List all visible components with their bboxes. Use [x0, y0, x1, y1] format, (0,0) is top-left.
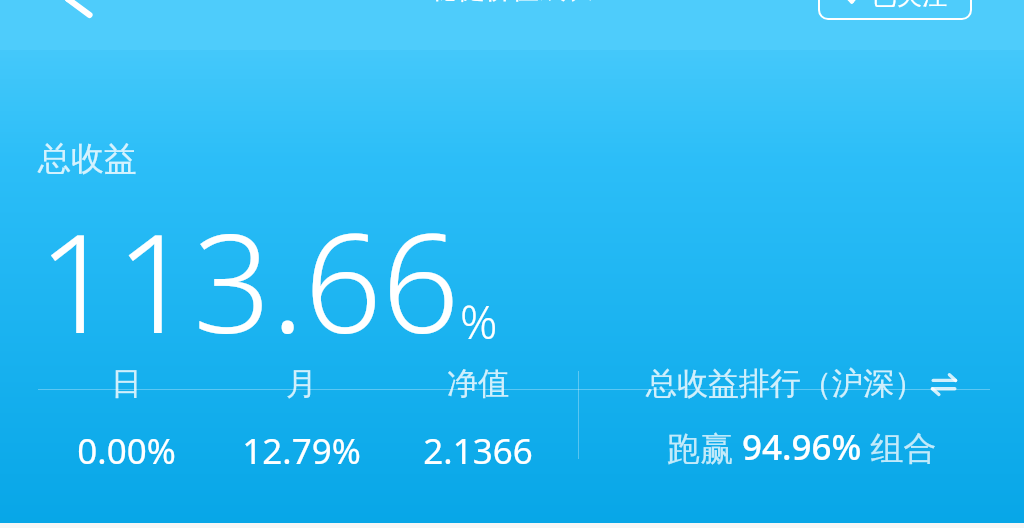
button[interactable]: 已关注 — [818, 0, 972, 20]
staticText: 跑赢 — [667, 425, 742, 470]
staticText: 月 — [286, 364, 317, 403]
staticText: % — [460, 290, 498, 353]
staticText: 总收益 — [38, 138, 137, 180]
button[interactable]: 总收益排行（沪深） — [598, 364, 1006, 471]
staticText: 2.1366 — [423, 427, 533, 475]
staticText: 113.66 — [38, 188, 460, 373]
staticText: 0.00% — [77, 427, 176, 475]
staticText: 日 — [111, 364, 142, 403]
staticText: 94.96% — [742, 423, 862, 471]
other: Switch ranking index — [929, 369, 959, 399]
button[interactable]: 月 — [201, 364, 401, 475]
staticText: 12.79% — [242, 427, 361, 475]
staticText: 已关注 — [872, 0, 947, 11]
button[interactable]: 净值 — [378, 364, 578, 475]
staticText: 组合 — [862, 425, 937, 470]
staticText: 总收益排行（沪深） — [646, 364, 925, 403]
staticText: 净值 — [447, 364, 509, 403]
staticText: 稳健价值成长 — [431, 0, 593, 6]
button[interactable]: Back — [50, 0, 110, 16]
button[interactable]: 日 — [26, 364, 226, 475]
